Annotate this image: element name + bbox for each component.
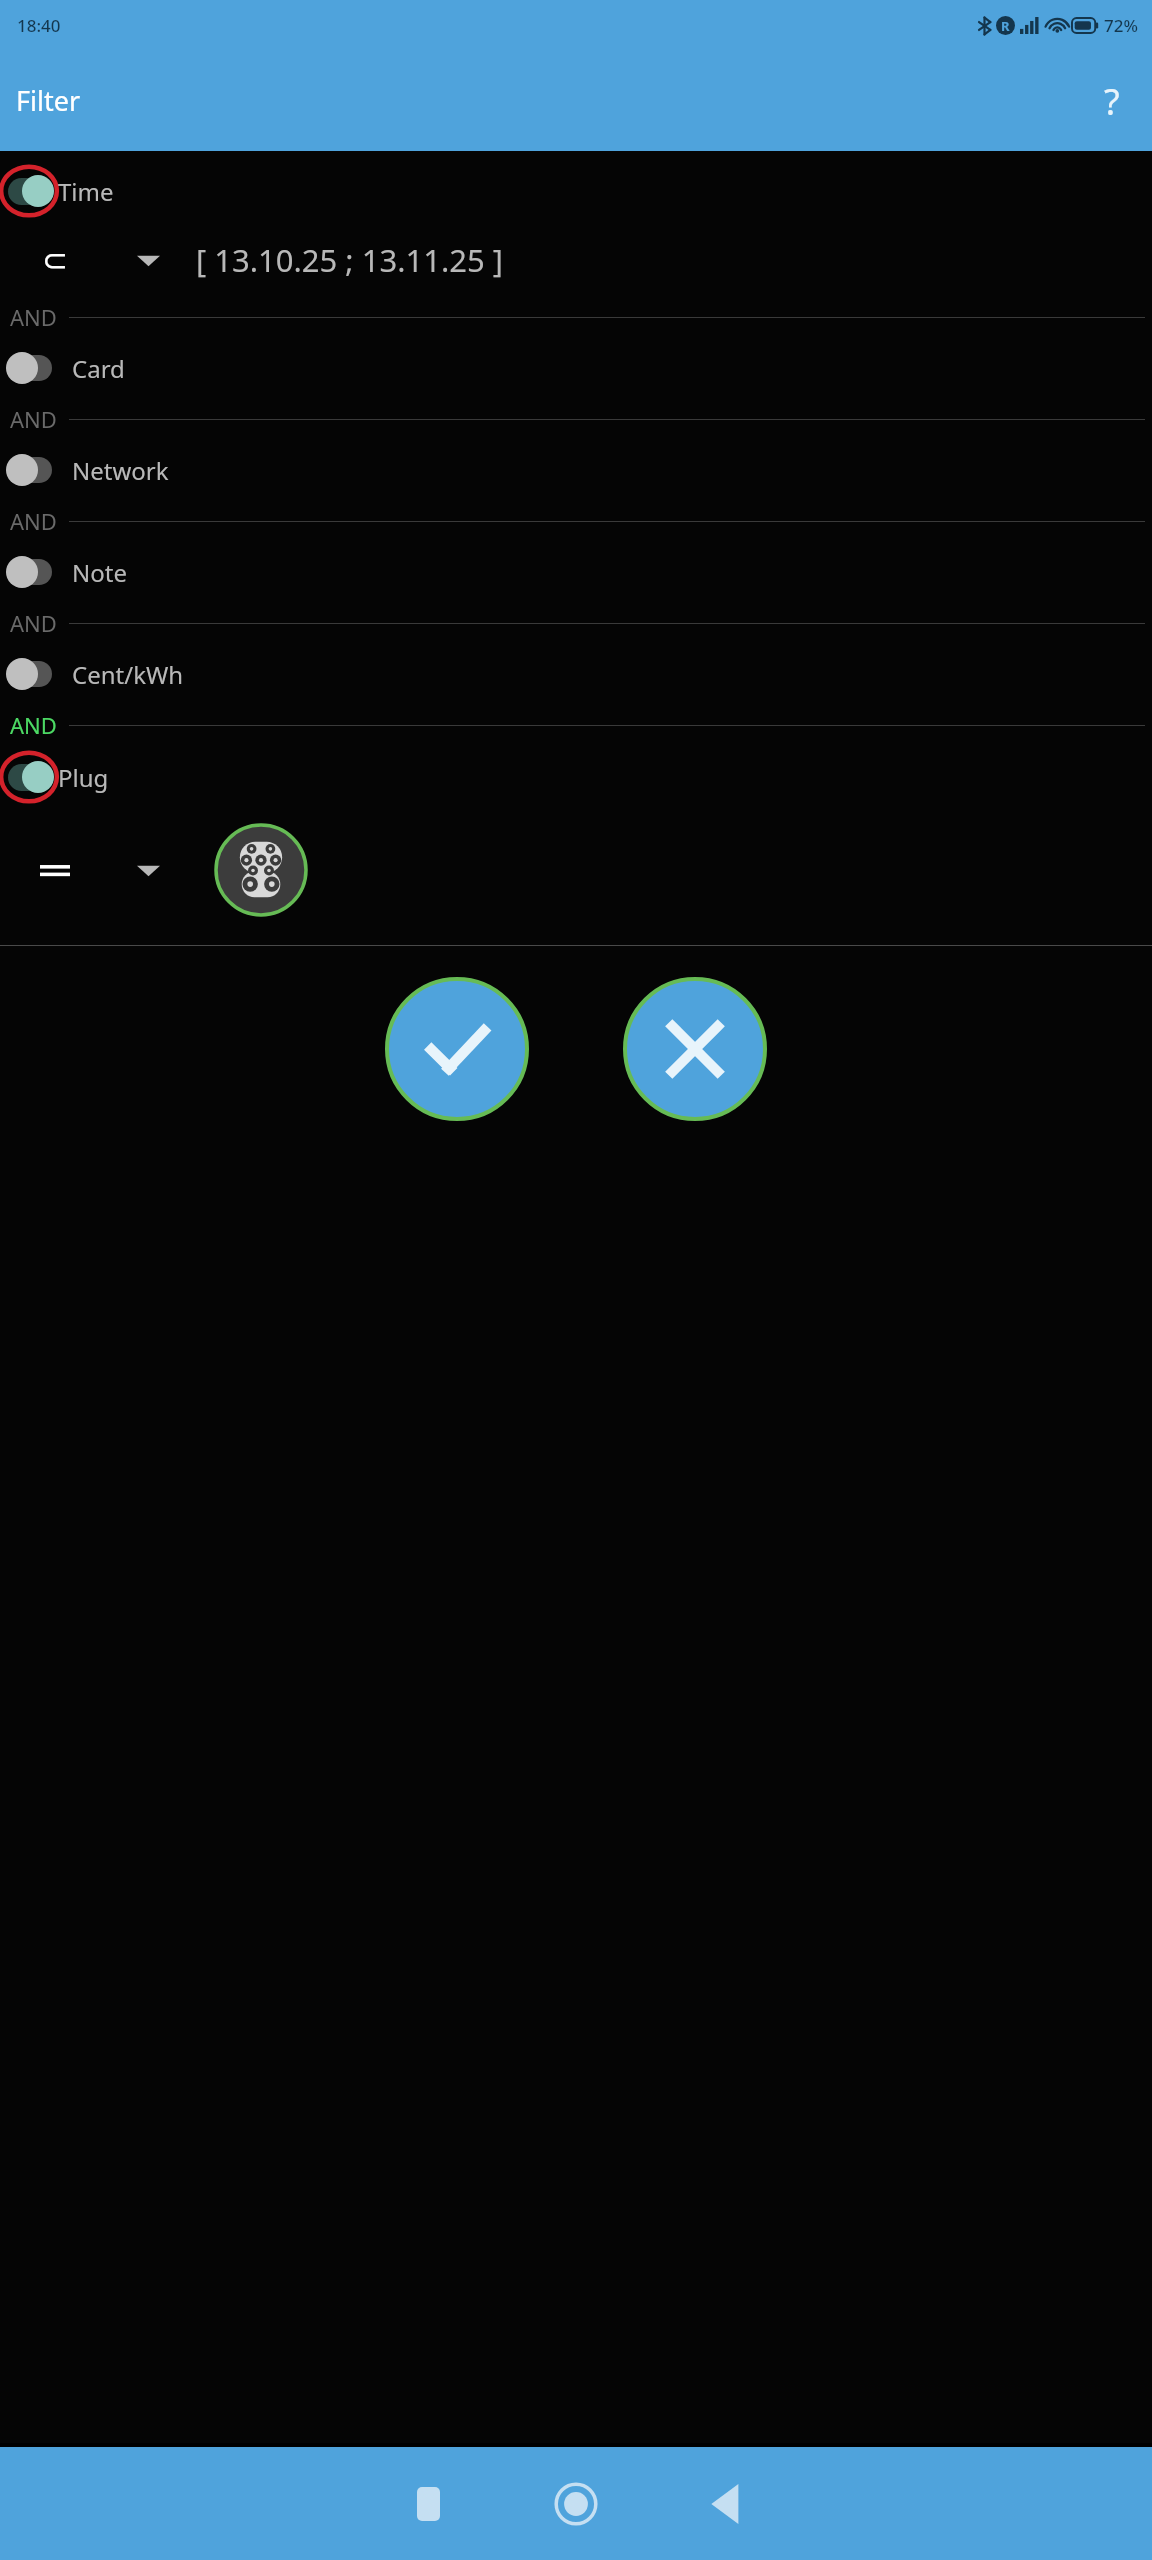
button[interactable]: Operator dropdown: [110, 223, 186, 297]
staticText: R: [1001, 17, 1010, 35]
staticText: 18:40: [17, 14, 61, 37]
staticText: Network: [72, 454, 169, 487]
staticText: [ 13.10.25 ; 13.11.25 ]: [196, 239, 503, 281]
button[interactable]: Plug operator dropdown: [110, 809, 186, 931]
staticText: 72%: [1104, 14, 1138, 37]
button[interactable]: Network: [6, 439, 1152, 501]
button[interactable]: Apply: [384, 976, 530, 1122]
button[interactable]: Back: [668, 2448, 780, 2560]
button[interactable]: Home: [520, 2448, 632, 2560]
staticText: AND: [10, 404, 57, 434]
button[interactable]: Cancel: [622, 976, 768, 1122]
button[interactable]: ⊂: [0, 223, 110, 297]
staticText: Filter: [16, 82, 81, 119]
staticText: AND: [10, 302, 57, 332]
button[interactable]: [0, 809, 110, 931]
button[interactable]: Plug: [0, 745, 1152, 809]
button[interactable]: [ 13.10.25 ; 13.11.25 ]: [196, 223, 1152, 297]
staticText: AND: [10, 710, 57, 740]
button[interactable]: Plug type: [214, 823, 308, 917]
button[interactable]: Cent/kWh: [6, 643, 1152, 705]
staticText: AND: [10, 608, 57, 638]
button[interactable]: Recent apps: [372, 2448, 484, 2560]
staticText: ?: [1104, 77, 1120, 125]
staticText: Plug: [58, 761, 109, 794]
button[interactable]: Time: [0, 159, 1152, 223]
staticText: ⊂: [42, 242, 68, 278]
button[interactable]: Note: [6, 541, 1152, 603]
button[interactable]: Card: [6, 337, 1152, 399]
staticText: Card: [72, 352, 125, 385]
staticText: Cent/kWh: [72, 658, 184, 691]
staticText: Time: [58, 175, 114, 208]
staticText: AND: [10, 506, 57, 536]
staticText: Note: [72, 556, 127, 589]
button[interactable]: Help: [1088, 77, 1136, 125]
